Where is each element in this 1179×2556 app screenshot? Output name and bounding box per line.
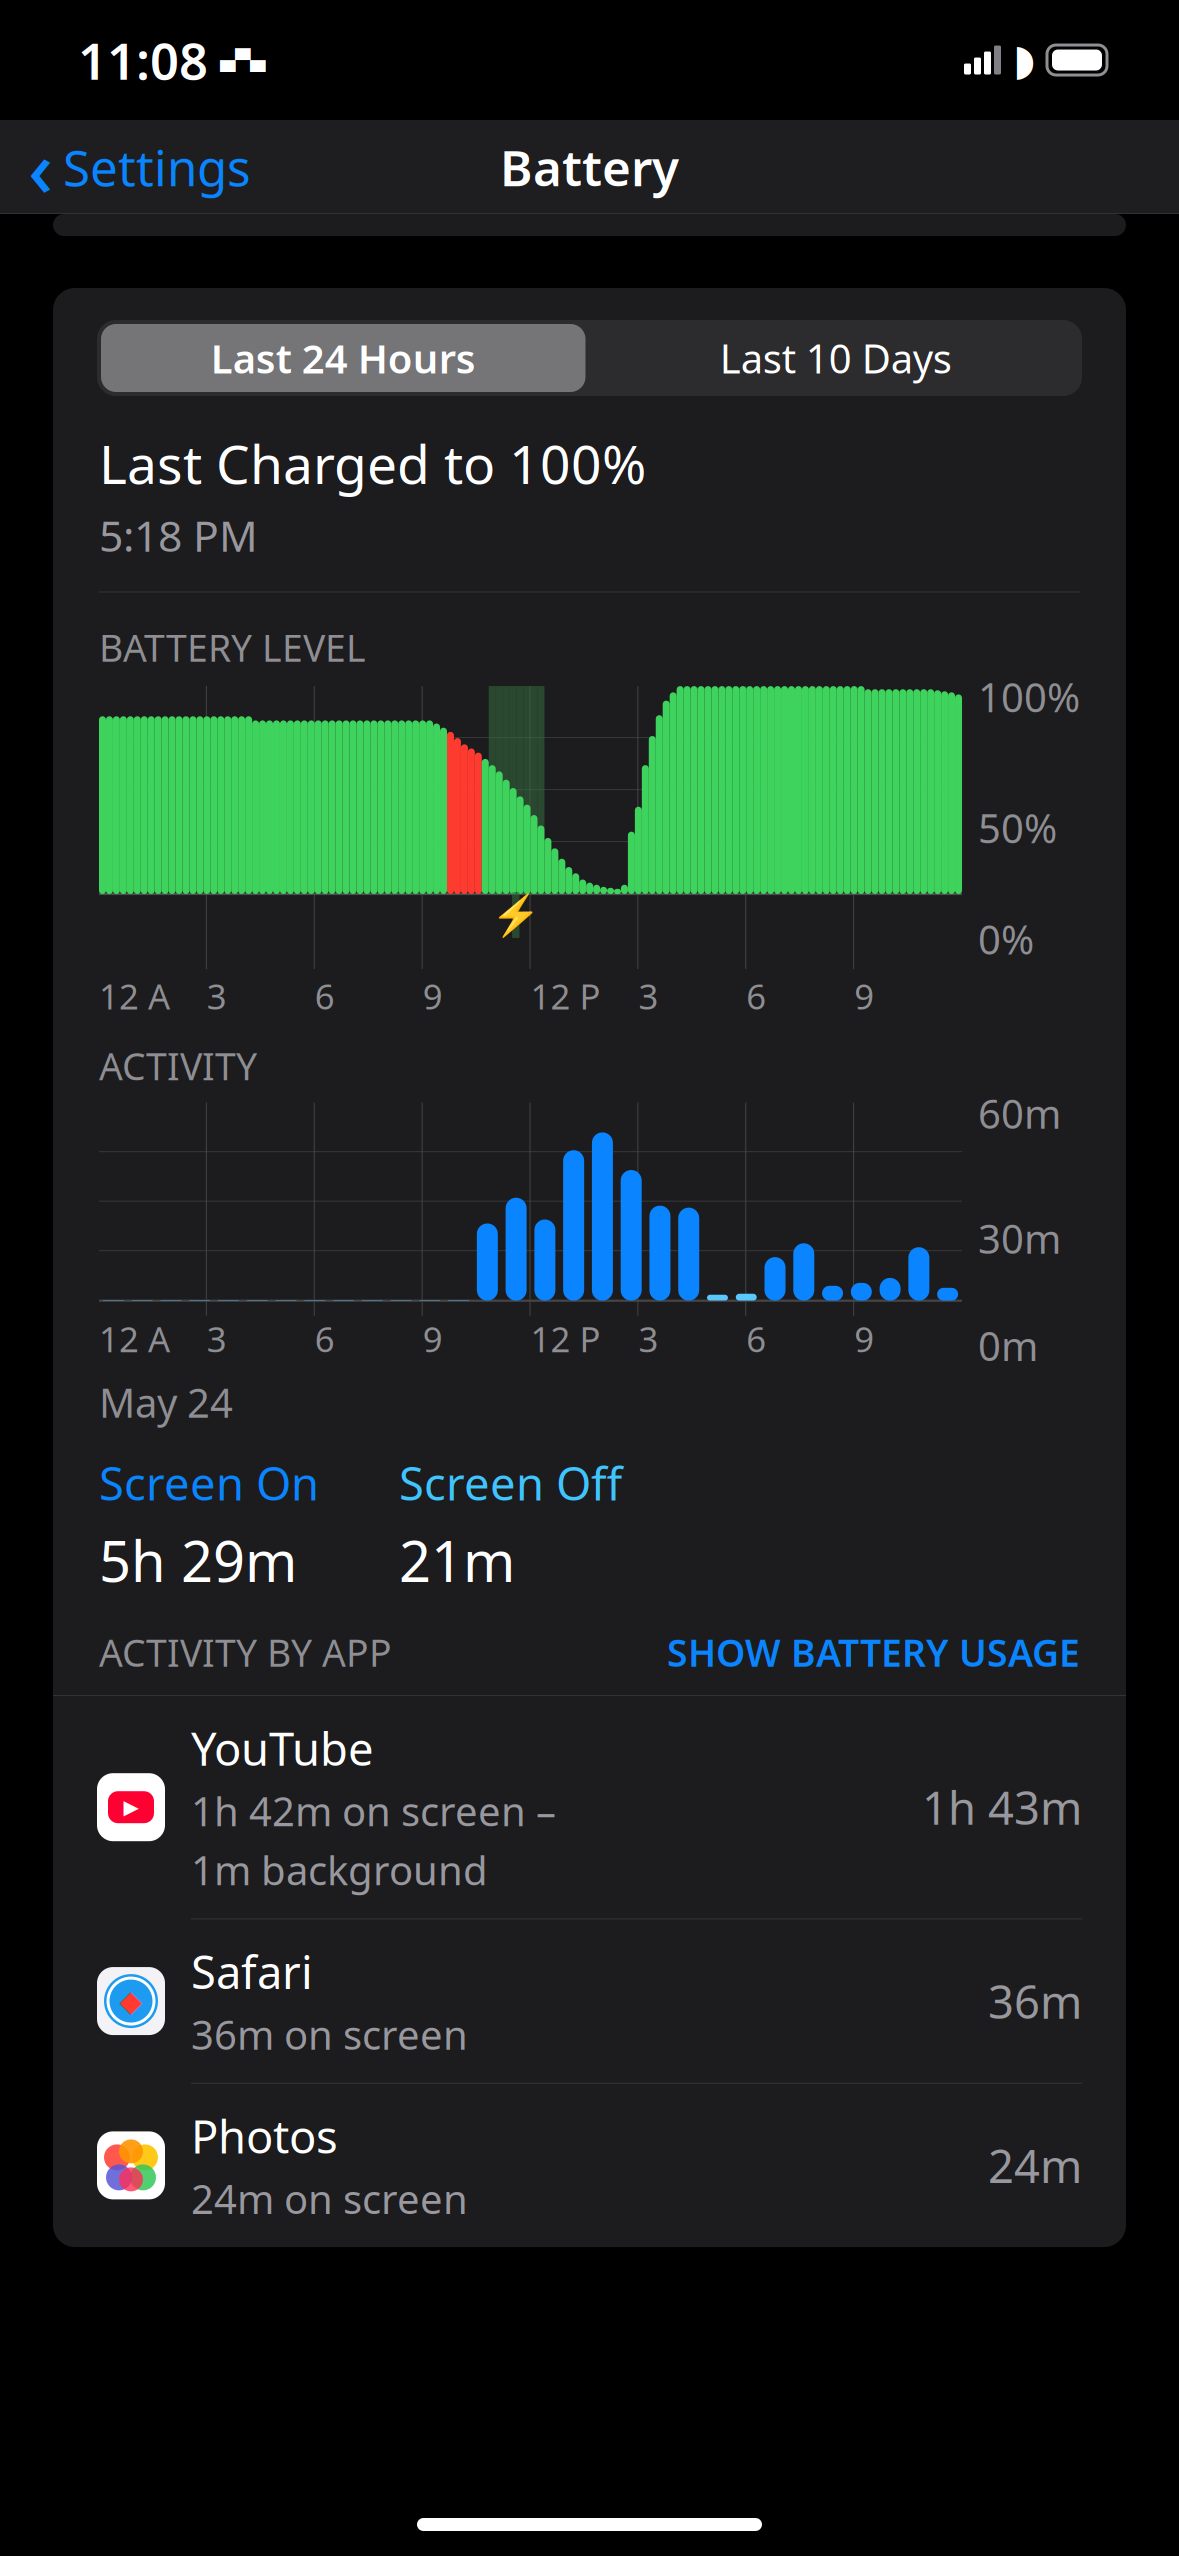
staticText: ◆ [119, 1984, 142, 2018]
staticText: ⚡ [491, 892, 541, 938]
staticText: 3 [207, 1316, 227, 1362]
staticText: 5h 29m [99, 1523, 297, 1597]
staticText: 5:18 PM [99, 507, 258, 563]
staticText: Last 24 Hours [211, 331, 476, 384]
staticText: 6 [746, 973, 766, 1019]
button[interactable]: ◆ [53, 1919, 1126, 2084]
staticText: ACTIVITY BY APP [99, 1627, 392, 1677]
staticText: ACTIVITY [99, 1041, 257, 1091]
staticText: May 24 [99, 1376, 233, 1429]
button[interactable]: SHOW BATTERY USAGE [667, 1627, 1080, 1677]
staticText: Settings [63, 134, 251, 200]
staticText: ▶ [123, 1796, 138, 1818]
staticText: 6 [315, 1316, 335, 1362]
staticText: 3 [638, 1316, 658, 1362]
button[interactable]: Photos [53, 2084, 1126, 2247]
staticText: 9 [423, 973, 443, 1019]
staticText: 11:08 [78, 26, 208, 94]
staticText: Screen Off [399, 1453, 622, 1513]
staticText: Screen On [99, 1453, 319, 1513]
staticText: 3 [638, 973, 658, 1019]
staticText: 36m [988, 1971, 1082, 2031]
staticText: 21m [399, 1523, 515, 1597]
staticText: Last Charged to 100% [99, 428, 646, 499]
button[interactable]: ‹ [0, 116, 251, 218]
staticText: 30m [978, 1212, 1061, 1265]
button[interactable]: ▶ [53, 1696, 1126, 1919]
staticText: 12 A [99, 973, 170, 1019]
staticText: 100% [978, 670, 1080, 723]
staticText: 36m on screen [191, 2008, 468, 2061]
staticText: Last 10 Days [720, 331, 952, 384]
staticText: 12 P [530, 973, 600, 1019]
staticText: ◗ [1013, 36, 1035, 84]
staticText: BATTERY LEVEL [99, 622, 366, 672]
staticText: YouTube [191, 1718, 374, 1778]
button[interactable]: Last 10 Days [589, 320, 1082, 396]
staticText: 50% [978, 801, 1057, 854]
staticText: 0% [978, 912, 1034, 965]
staticText: SHOW BATTERY USAGE [667, 1627, 1080, 1677]
staticText: Battery [500, 134, 679, 200]
staticText: 60m [978, 1087, 1061, 1140]
staticText: ‹ [28, 116, 53, 218]
button[interactable]: Last 24 Hours [97, 320, 589, 396]
staticText: 6 [746, 1316, 766, 1362]
staticText: 3 [207, 973, 227, 1019]
staticText: 6 [315, 973, 335, 1019]
staticText: Photos [191, 2106, 338, 2166]
staticText: 1h 42m on screen – [191, 1784, 556, 1837]
staticText: 24m [988, 2135, 1082, 2195]
staticText: 1m background [191, 1843, 488, 1896]
staticText: 9 [854, 973, 874, 1019]
staticText: 12 P [530, 1316, 600, 1362]
staticText: 9 [423, 1316, 443, 1362]
staticText: 12 A [99, 1316, 170, 1362]
staticText: 9 [854, 1316, 874, 1362]
staticText: Safari [191, 1941, 313, 2002]
staticText: 24m on screen [191, 2172, 468, 2225]
staticText: ▄▀▄ [220, 49, 265, 71]
staticText: 0m [978, 1319, 1038, 1372]
staticText: 1h 43m [922, 1777, 1082, 1837]
